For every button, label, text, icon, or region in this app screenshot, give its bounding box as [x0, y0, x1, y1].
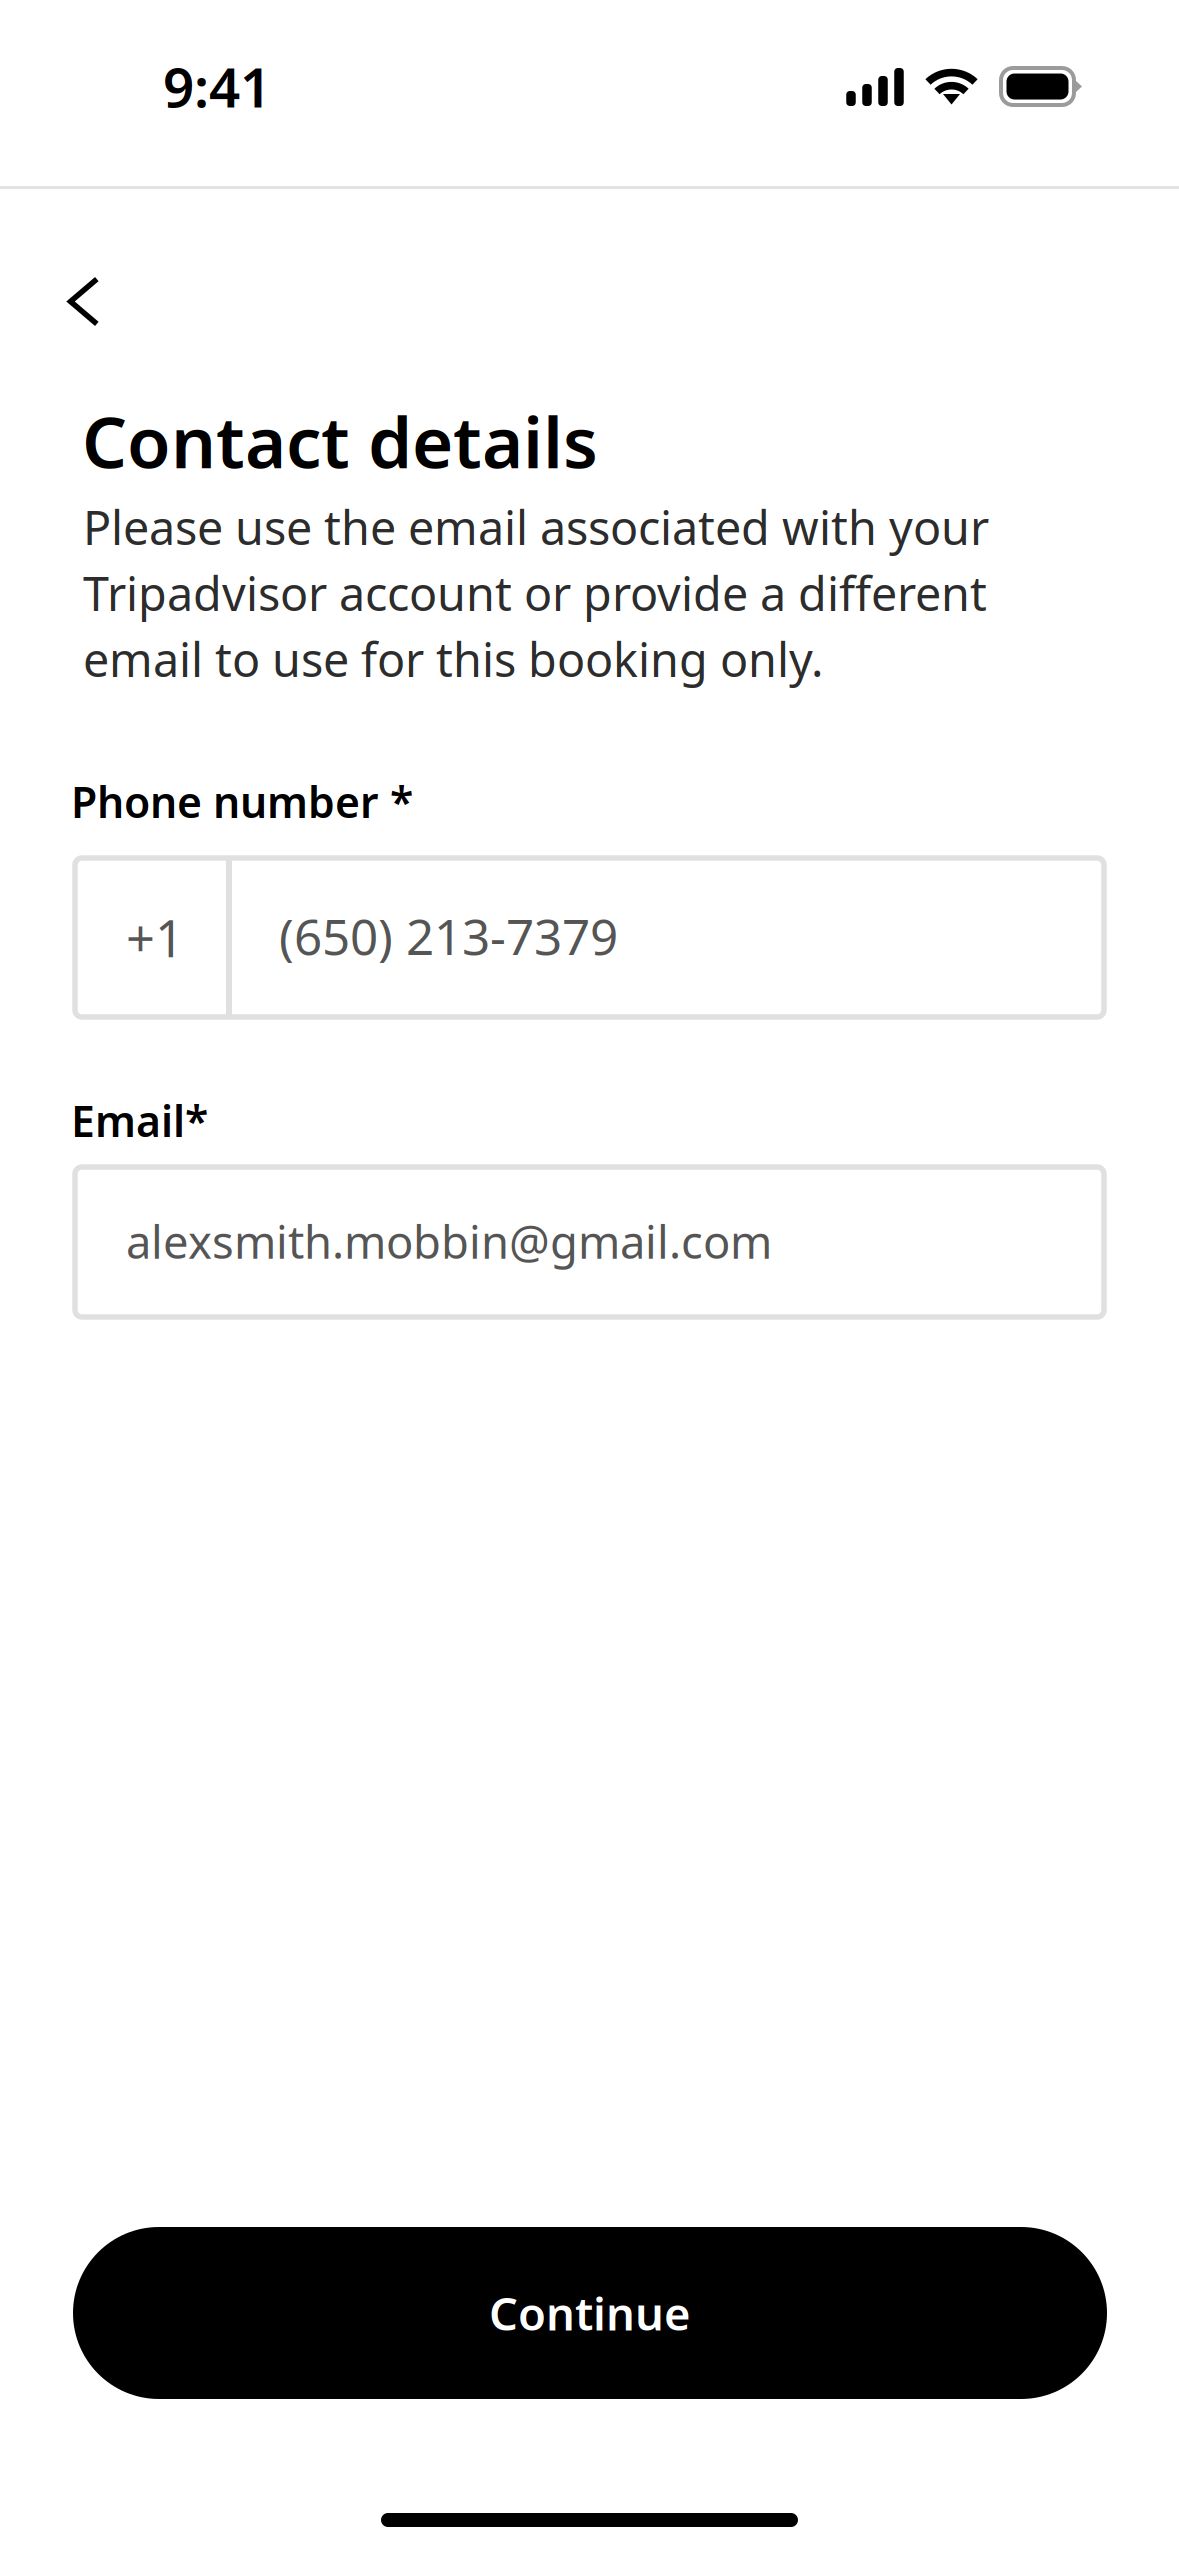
button[interactable]: Back: [0, 194, 180, 326]
staticText: alexsmith.mobbin@gmail.com: [126, 1211, 772, 1271]
staticText: 9:41: [163, 50, 271, 123]
staticText: (650) 213-7379: [279, 903, 618, 968]
staticText: Phone number *: [71, 773, 413, 830]
staticText: +1: [126, 904, 184, 971]
button[interactable]: alexsmith.mobbin@gmail.com: [75, 1167, 1104, 1317]
button[interactable]: Continue: [73, 2227, 1107, 2399]
staticText: Contact details: [82, 394, 598, 488]
staticText: Please use the email associated with you…: [83, 496, 989, 690]
staticText: Email*: [71, 1092, 208, 1149]
button[interactable]: +1: [75, 858, 1104, 1017]
staticText: Continue: [489, 2283, 691, 2343]
